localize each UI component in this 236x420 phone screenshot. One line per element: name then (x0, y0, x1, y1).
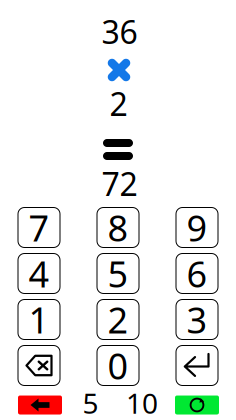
staticText: 8 (107, 204, 128, 251)
staticText: 7 (28, 204, 49, 251)
button[interactable]: 6 (175, 253, 218, 294)
staticText: 2 (109, 82, 127, 125)
button[interactable]: 1 (17, 299, 60, 340)
staticText: 10 (126, 384, 158, 420)
staticText: 72 (101, 162, 137, 205)
staticText: 6 (186, 250, 207, 297)
button[interactable]: 4 (17, 253, 60, 294)
button[interactable]: 7 (17, 207, 60, 248)
staticText: 5 (107, 250, 128, 297)
button[interactable]: Undo (18, 395, 62, 414)
staticText: 9 (186, 204, 207, 251)
staticText: 1 (28, 296, 49, 343)
staticText: 3 (186, 296, 207, 343)
button[interactable]: 8 (96, 207, 139, 248)
staticText: 0 (107, 342, 128, 389)
button[interactable]: Backspace (17, 345, 60, 386)
button[interactable]: 2 (96, 299, 139, 340)
staticText: 2 (107, 296, 128, 343)
button[interactable]: 5 (96, 253, 139, 294)
button[interactable]: 3 (175, 299, 218, 340)
button[interactable]: Enter (175, 345, 218, 386)
button[interactable]: 9 (175, 207, 218, 248)
staticText: 4 (28, 250, 49, 297)
staticText: 36 (101, 10, 137, 53)
staticText: 5 (82, 384, 98, 420)
button[interactable]: 0 (96, 345, 139, 386)
button[interactable]: Reset (175, 395, 219, 414)
